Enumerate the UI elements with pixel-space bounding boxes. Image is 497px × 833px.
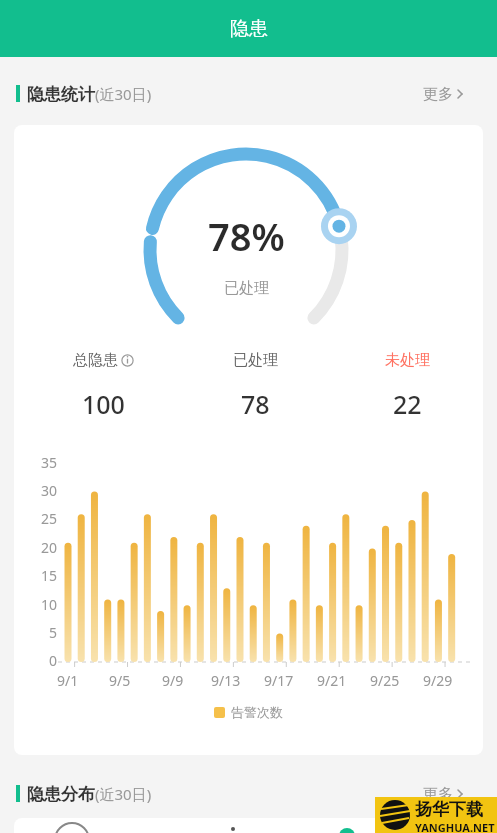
staticText: 35 [41, 453, 58, 472]
staticText: 未处理 [385, 351, 430, 370]
staticText: (近30日) [95, 784, 152, 804]
staticText: 已处理 [233, 351, 278, 370]
staticText: 78% [208, 210, 285, 260]
staticText: 更多 [423, 785, 453, 804]
button[interactable]: 隐患 [0, 0, 497, 57]
button[interactable]: 更多 [423, 82, 467, 106]
staticText: 9/9 [162, 671, 184, 690]
staticText: 隐患 [230, 17, 268, 41]
staticText: 25 [41, 509, 58, 528]
staticText: 5 [49, 623, 58, 642]
staticText: 10 [41, 595, 58, 614]
staticText: 隐患分布 [27, 784, 95, 805]
staticText: YANGHUA.NET [415, 820, 495, 833]
staticText: 隐患统计 [27, 84, 95, 105]
button[interactable]: 更多 [423, 782, 467, 806]
staticText: 100 [82, 387, 125, 421]
staticText: 9/17 [264, 671, 294, 690]
staticText: 9/1 [57, 671, 79, 690]
staticText: 9/21 [317, 671, 347, 690]
staticText: 78 [241, 387, 270, 421]
staticText: 已处理 [224, 279, 269, 298]
staticText: 更多 [423, 85, 453, 104]
staticText: 0 [49, 651, 58, 670]
staticText: 22 [393, 387, 422, 421]
staticText: 20 [41, 538, 58, 557]
staticText: 9/5 [109, 671, 131, 690]
staticText: 告警次数 [231, 704, 283, 720]
staticText: 30 [41, 481, 58, 500]
staticText: 15 [41, 566, 58, 585]
button[interactable]: 总隐患 [73, 347, 134, 373]
staticText: 9/29 [423, 671, 453, 690]
staticText: 9/25 [370, 671, 400, 690]
staticText: (近30日) [95, 84, 152, 104]
staticText: 9/13 [211, 671, 241, 690]
staticText: 扬华下载 [415, 799, 483, 820]
staticText: 总隐患 [73, 351, 118, 370]
